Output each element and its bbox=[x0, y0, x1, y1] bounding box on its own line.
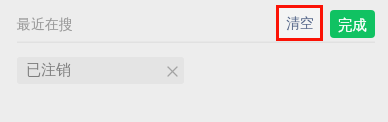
staticText: 最近在搜 bbox=[17, 16, 73, 34]
staticText: 已注销 bbox=[26, 61, 71, 80]
button[interactable]: 最近在搜 bbox=[17, 12, 73, 37]
button[interactable]: Remove 已注销 bbox=[159, 58, 184, 84]
staticText: 完成 bbox=[338, 16, 367, 34]
button[interactable]: 完成 bbox=[330, 10, 375, 38]
button[interactable]: 清空 bbox=[276, 5, 323, 41]
button[interactable]: 已注销 bbox=[17, 57, 184, 84]
staticText: 清空 bbox=[286, 15, 314, 33]
